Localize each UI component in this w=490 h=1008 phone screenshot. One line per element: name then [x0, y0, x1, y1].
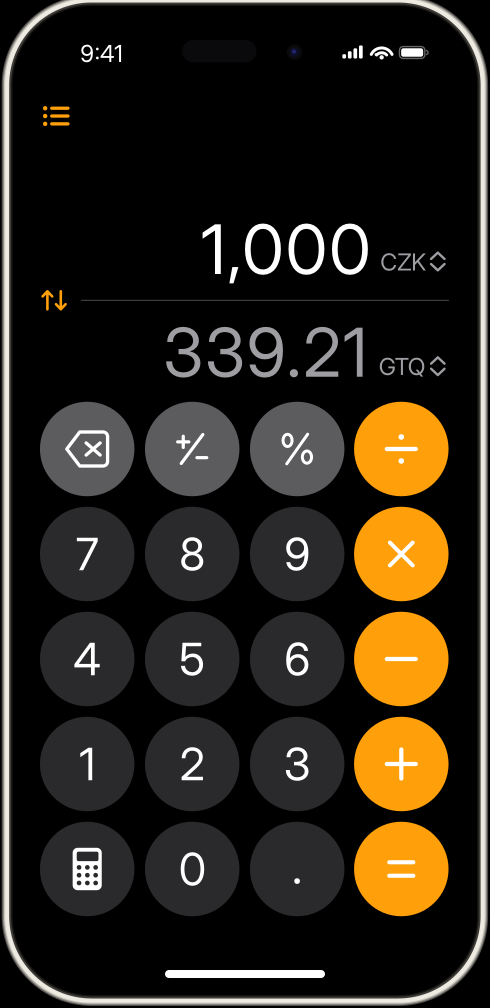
- button[interactable]: 0: [145, 822, 239, 916]
- button[interactable]: Change target currency: [424, 348, 452, 384]
- staticText: 4: [73, 632, 101, 686]
- button[interactable]: 3: [250, 717, 344, 811]
- button[interactable]: 5: [145, 612, 239, 706]
- button[interactable]: Percent: [250, 402, 344, 496]
- staticText: 3: [284, 737, 311, 791]
- staticText: 0: [179, 842, 206, 896]
- button[interactable]: Plus minus: [145, 402, 239, 496]
- staticText: 6: [284, 632, 310, 686]
- staticText: 2: [180, 737, 205, 791]
- staticText: 1,000: [201, 208, 371, 290]
- button[interactable]: 7: [40, 507, 134, 601]
- button[interactable]: 1: [40, 717, 134, 811]
- staticText: 339.21: [163, 311, 367, 393]
- button[interactable]: Divide: [354, 402, 449, 496]
- staticText: 8: [179, 527, 205, 581]
- button[interactable]: Decimal point: [250, 822, 344, 916]
- button[interactable]: Swap currencies: [34, 279, 76, 321]
- staticText: 1: [79, 737, 95, 791]
- button[interactable]: Delete: [40, 402, 134, 496]
- staticText: GTQ: [379, 352, 426, 381]
- button[interactable]: Change source currency: [424, 243, 452, 279]
- staticText: 5: [179, 632, 205, 686]
- button[interactable]: Currency list: [29, 92, 83, 140]
- button[interactable]: 8: [145, 507, 239, 601]
- button[interactable]: Plus: [354, 717, 449, 811]
- staticText: 7: [76, 527, 99, 581]
- staticText: CZK: [380, 248, 426, 276]
- staticText: 9: [284, 527, 310, 581]
- button[interactable]: 9: [250, 507, 344, 601]
- button[interactable]: Minus: [354, 612, 449, 706]
- button[interactable]: 2: [145, 717, 239, 811]
- button[interactable]: 4: [40, 612, 134, 706]
- button[interactable]: Multiply: [354, 507, 449, 601]
- staticText: 9:41: [80, 39, 123, 68]
- button[interactable]: Equals: [354, 822, 449, 916]
- button[interactable]: 6: [250, 612, 344, 706]
- button[interactable]: Calculator: [40, 822, 134, 916]
